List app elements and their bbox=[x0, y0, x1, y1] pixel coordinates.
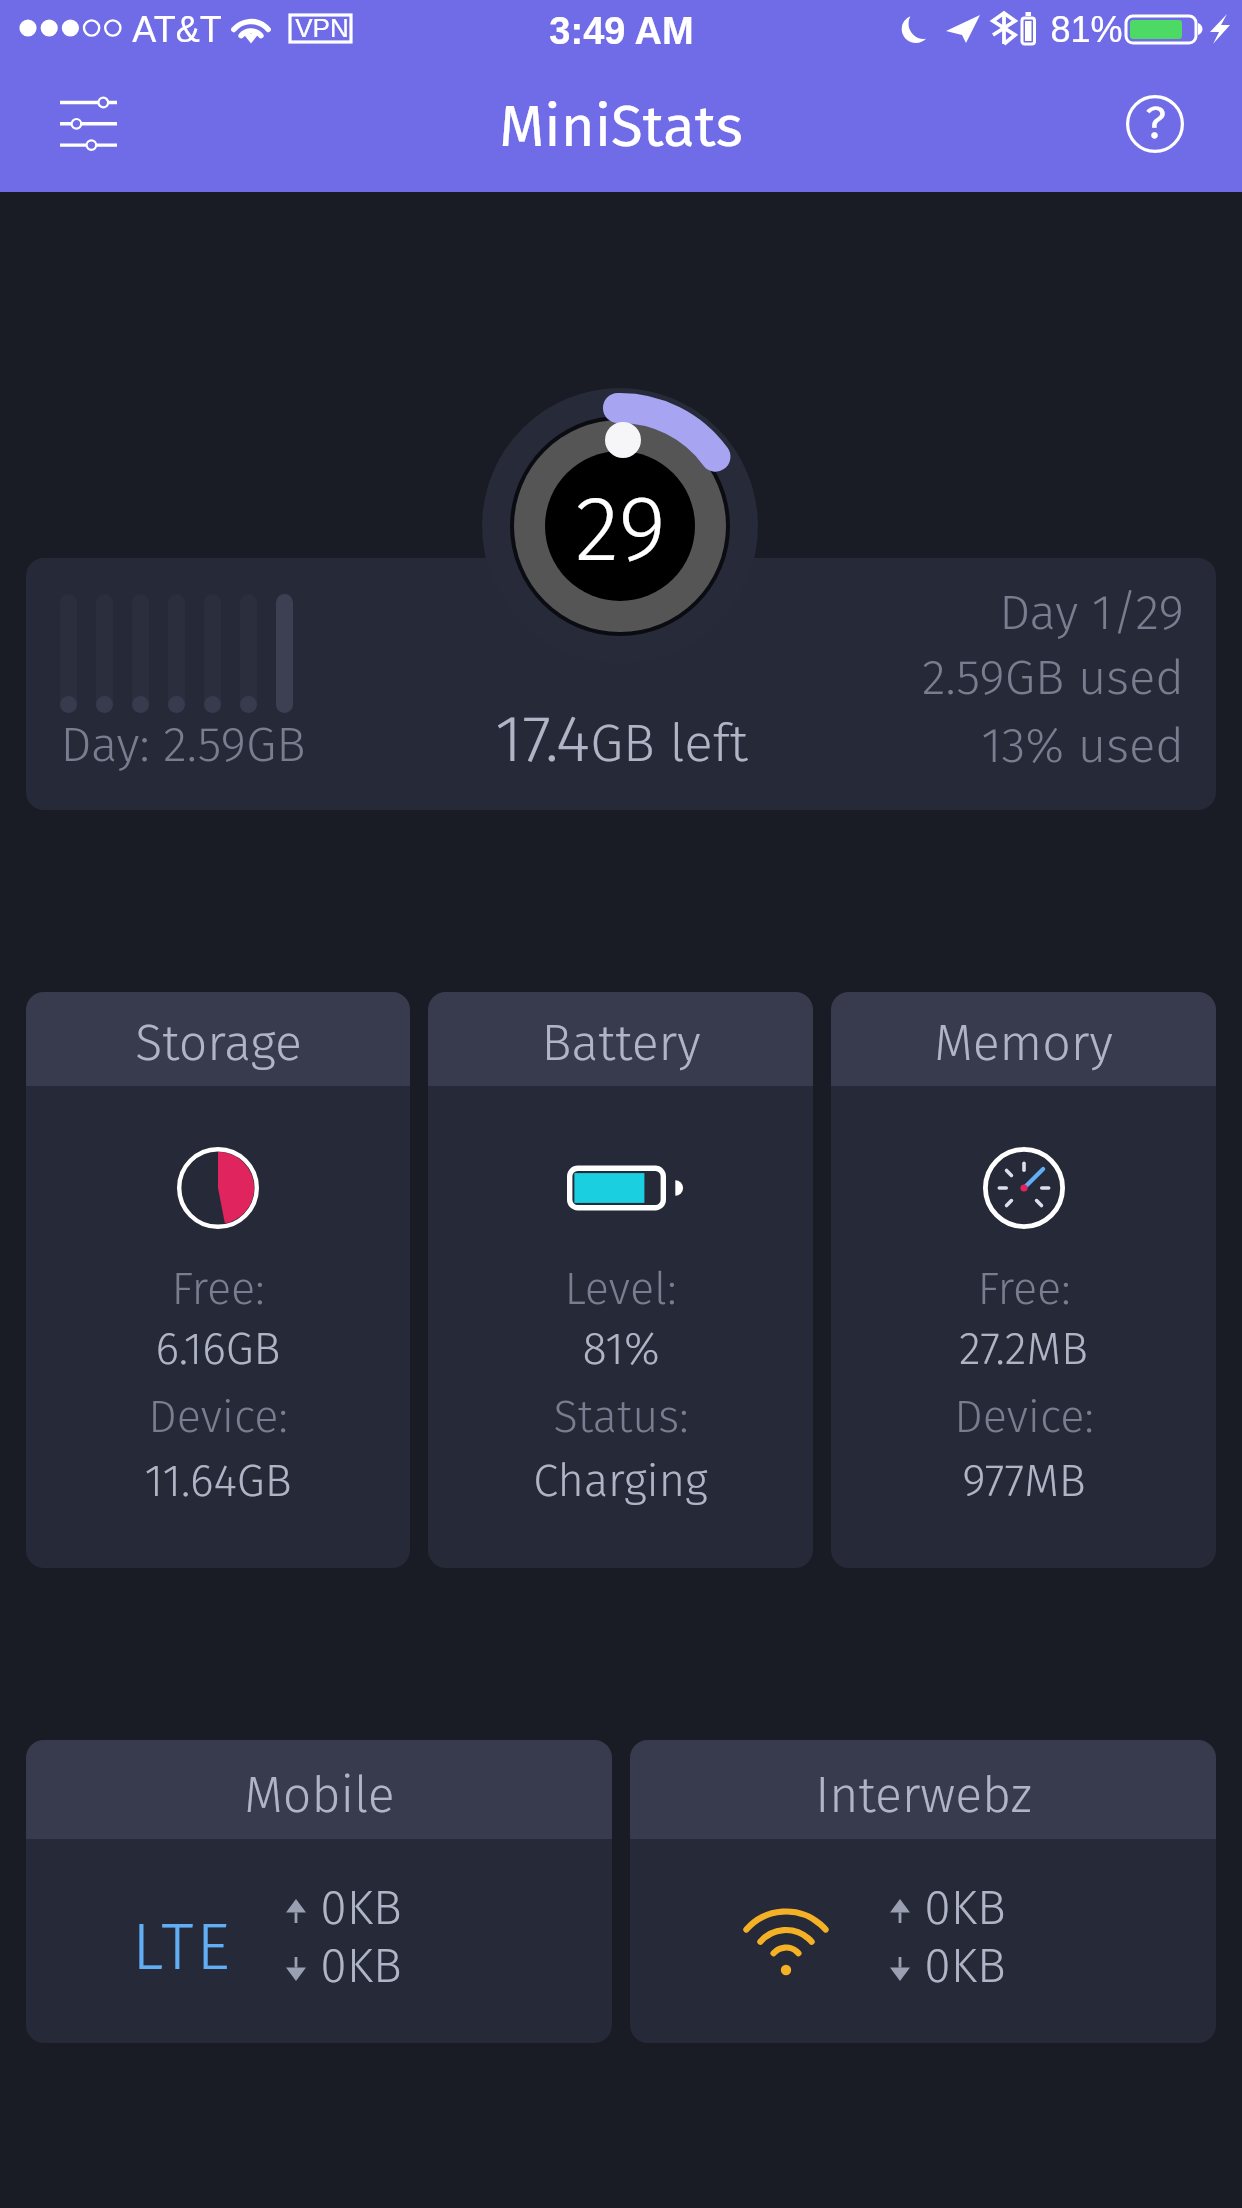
staticText: 0KB bbox=[924, 1879, 1006, 1937]
staticText: 81% bbox=[1050, 9, 1123, 49]
staticText: Battery bbox=[541, 1013, 701, 1073]
button[interactable]: Interwebz bbox=[630, 1740, 1216, 2043]
staticText: Device: bbox=[148, 1390, 288, 1444]
staticText: Free: bbox=[171, 1262, 265, 1316]
button[interactable]: Day: 2.59GB bbox=[26, 558, 1216, 810]
button[interactable]: Help bbox=[1100, 71, 1210, 177]
staticText: Level: bbox=[564, 1262, 677, 1316]
staticText: 0KB bbox=[320, 1937, 402, 1995]
staticText: 2.59GB used bbox=[922, 648, 1184, 707]
staticText: 11.64GB bbox=[144, 1454, 292, 1508]
staticText: VPN bbox=[295, 13, 349, 42]
staticText: AT&T bbox=[132, 9, 222, 49]
button[interactable]: Settings bbox=[28, 77, 148, 177]
staticText: Free: bbox=[977, 1262, 1071, 1316]
staticText: Charging bbox=[533, 1454, 708, 1508]
staticText: 6.16GB bbox=[155, 1322, 281, 1376]
staticText: Memory bbox=[934, 1013, 1113, 1073]
button[interactable]: Memory bbox=[831, 992, 1216, 1568]
staticText: Mobile bbox=[244, 1765, 395, 1825]
staticText: 29 bbox=[575, 474, 666, 578]
staticText: 81% bbox=[582, 1322, 660, 1376]
staticText: Day 1/29 bbox=[999, 583, 1184, 642]
button[interactable]: Storage bbox=[26, 992, 410, 1568]
staticText: Device: bbox=[954, 1390, 1094, 1444]
staticText: 17.4 bbox=[495, 699, 590, 778]
staticText: 3:49 AM bbox=[549, 10, 694, 52]
staticText: 0KB bbox=[924, 1937, 1006, 1995]
staticText: 27.2MB bbox=[959, 1322, 1088, 1376]
button[interactable]: Battery bbox=[428, 992, 813, 1568]
staticText: ? bbox=[1145, 96, 1166, 150]
staticText: Storage bbox=[135, 1013, 302, 1073]
staticText: MiniStats bbox=[499, 92, 743, 162]
staticText: Day: 2.59GB bbox=[60, 715, 306, 774]
staticText: GB left bbox=[590, 711, 748, 775]
button[interactable]: Mobile bbox=[26, 1740, 612, 2043]
staticText: Status: bbox=[553, 1390, 689, 1444]
staticText: 13% used bbox=[981, 716, 1184, 775]
staticText: 977MB bbox=[962, 1454, 1086, 1508]
staticText: LTE bbox=[132, 1908, 233, 1986]
staticText: Interwebz bbox=[815, 1765, 1032, 1825]
staticText: 0KB bbox=[320, 1879, 402, 1937]
